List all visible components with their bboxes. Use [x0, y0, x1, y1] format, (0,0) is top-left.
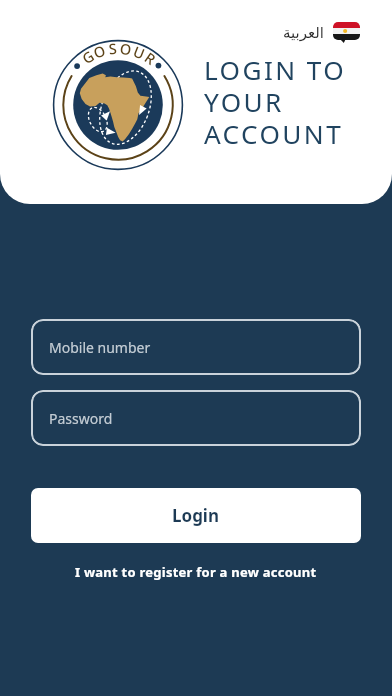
button[interactable]: I want to register for a new account — [31, 557, 361, 587]
staticText: Password — [49, 409, 113, 428]
button[interactable]: Mobile number — [31, 319, 361, 375]
staticText: O — [119, 38, 133, 59]
staticText: O — [90, 40, 108, 62]
staticText: G — [78, 45, 98, 68]
staticText: LOGIN TO YOUR ACCOUNT — [204, 52, 346, 152]
staticText: U — [131, 41, 148, 63]
staticText: I want to register for a new account — [75, 563, 317, 581]
staticText: R — [141, 47, 161, 69]
other: Language — [333, 22, 360, 43]
staticText: العربية — [283, 24, 324, 41]
other: Gosour logo — [52, 39, 184, 171]
button[interactable]: العربية — [280, 19, 363, 46]
staticText: Mobile number — [49, 338, 151, 357]
button[interactable]: Password — [31, 390, 361, 446]
staticText: S — [108, 38, 117, 59]
staticText: Login — [172, 504, 220, 527]
button[interactable]: Login — [31, 488, 361, 543]
